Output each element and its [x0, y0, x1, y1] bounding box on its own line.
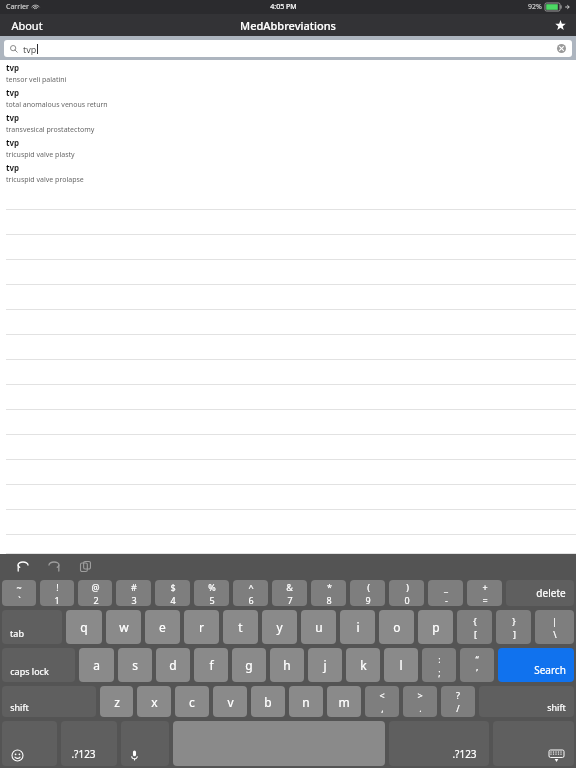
- button[interactable]: .?123: [389, 721, 489, 766]
- button[interactable]: Favorites: [545, 14, 576, 36]
- staticText: ): [406, 581, 409, 593]
- staticText: tricuspid valve plasty: [6, 150, 75, 160]
- button[interactable]: >: [403, 686, 437, 717]
- button[interactable]: a: [79, 648, 114, 682]
- button[interactable]: (: [350, 580, 385, 606]
- other: Dictation: [131, 750, 138, 761]
- button[interactable]: ~: [2, 580, 36, 606]
- staticText: 6: [248, 594, 254, 606]
- button[interactable]: !: [40, 580, 74, 606]
- button[interactable]: |: [535, 610, 574, 644]
- button[interactable]: delete: [506, 580, 574, 606]
- button[interactable]: $: [155, 580, 190, 606]
- button[interactable]: c: [175, 686, 209, 717]
- button[interactable]: %: [194, 580, 229, 606]
- staticText: ~: [16, 581, 22, 593]
- staticText: tvp: [23, 43, 37, 55]
- button[interactable]: n: [289, 686, 323, 717]
- button[interactable]: z: [100, 686, 133, 717]
- staticText: !: [56, 581, 59, 593]
- button[interactable]: m: [327, 686, 361, 717]
- button[interactable]: caps lock: [2, 648, 75, 682]
- button[interactable]: tvp: [0, 85, 576, 110]
- button[interactable]: l: [384, 648, 418, 682]
- button[interactable]: :: [422, 648, 456, 682]
- staticText: =: [482, 594, 488, 606]
- button[interactable]: r: [184, 610, 219, 644]
- button[interactable]: o: [379, 610, 414, 644]
- staticText: :: [438, 653, 441, 665]
- button[interactable]: Redo: [43, 555, 65, 577]
- staticText: tvp: [6, 137, 20, 148]
- button[interactable]: tvp: [0, 60, 576, 85]
- button[interactable]: Paste: [74, 555, 96, 577]
- button[interactable]: Clear text: [557, 44, 566, 53]
- button[interactable]: d: [156, 648, 190, 682]
- button[interactable]: &: [272, 580, 307, 606]
- button[interactable]: Undo: [12, 555, 34, 577]
- button[interactable]: u: [301, 610, 336, 644]
- button[interactable]: @: [78, 580, 112, 606]
- staticText: 9: [365, 594, 371, 606]
- button[interactable]: h: [270, 648, 304, 682]
- staticText: 0: [404, 594, 410, 606]
- button[interactable]: tvp: [0, 160, 576, 185]
- button[interactable]: tvp: [0, 110, 576, 135]
- button[interactable]: f: [194, 648, 228, 682]
- button[interactable]: p: [418, 610, 453, 644]
- button[interactable]: w: [106, 610, 141, 644]
- button[interactable]: tvp: [4, 40, 572, 57]
- other: Hide keyboard: [549, 750, 564, 762]
- button[interactable]: Emoji: [2, 721, 57, 766]
- staticText: tvp: [6, 162, 20, 173]
- button[interactable]: Search: [498, 648, 574, 682]
- button[interactable]: {: [457, 610, 492, 644]
- button[interactable]: ?: [441, 686, 475, 717]
- button[interactable]: t: [223, 610, 258, 644]
- staticText: |: [552, 615, 557, 627]
- staticText: l: [399, 657, 403, 673]
- button[interactable]: _: [428, 580, 463, 606]
- button[interactable]: tvp: [0, 135, 576, 160]
- button[interactable]: #: [116, 580, 151, 606]
- button[interactable]: }: [496, 610, 531, 644]
- button[interactable]: ): [389, 580, 424, 606]
- button[interactable]: ^: [233, 580, 268, 606]
- button[interactable]: Hide keyboard: [493, 721, 574, 766]
- button[interactable]: <: [365, 686, 399, 717]
- staticText: .?123: [452, 747, 477, 761]
- button[interactable]: i: [340, 610, 375, 644]
- button[interactable]: “: [460, 648, 494, 682]
- button[interactable]: *: [311, 580, 346, 606]
- button[interactable]: j: [308, 648, 342, 682]
- button[interactable]: .?123: [61, 721, 117, 766]
- staticText: f: [209, 657, 214, 673]
- button[interactable]: y: [262, 610, 297, 644]
- button[interactable]: x: [137, 686, 171, 717]
- button[interactable]: shift: [2, 686, 96, 717]
- button[interactable]: k: [346, 648, 380, 682]
- button[interactable]: v: [213, 686, 247, 717]
- staticText: 5: [209, 594, 215, 606]
- button[interactable]: g: [232, 648, 266, 682]
- staticText: tvp: [6, 87, 20, 98]
- button[interactable]: e: [145, 610, 180, 644]
- button[interactable]: tab: [2, 610, 62, 644]
- button[interactable]: +: [467, 580, 502, 606]
- staticText: *: [327, 581, 332, 593]
- staticText: p: [432, 619, 440, 635]
- staticText: transvesical prostatectomy: [6, 125, 95, 135]
- button[interactable]: s: [118, 648, 152, 682]
- staticText: r: [199, 619, 204, 635]
- button[interactable]: Dictation: [121, 721, 169, 766]
- staticText: >: [417, 689, 423, 701]
- staticText: c: [189, 694, 195, 710]
- staticText: a: [93, 657, 100, 673]
- button[interactable]: b: [251, 686, 285, 717]
- button[interactable]: q: [66, 610, 102, 644]
- button[interactable]: About: [0, 14, 54, 36]
- staticText: (: [367, 581, 370, 593]
- staticText: u: [315, 619, 323, 635]
- button[interactable]: shift: [479, 686, 574, 717]
